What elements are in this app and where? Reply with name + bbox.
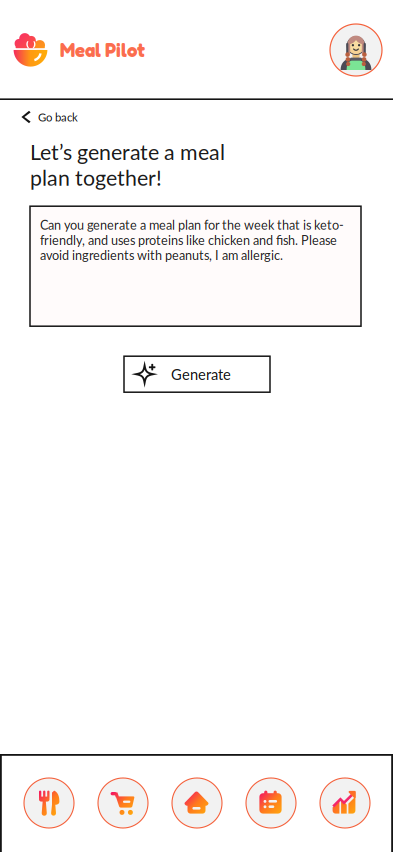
- button[interactable]: Groceries: [98, 778, 148, 828]
- staticText: Go back: [38, 110, 78, 124]
- staticText: Can you generate a meal plan for the wee…: [40, 217, 344, 263]
- button[interactable]: Profile: [330, 24, 382, 76]
- button[interactable]: Progress: [320, 778, 370, 828]
- button[interactable]: Generate: [124, 356, 270, 392]
- button[interactable]: Home: [172, 778, 222, 828]
- staticText: Let’s generate a meal plan together!: [30, 139, 225, 190]
- button[interactable]: Plan: [246, 778, 296, 828]
- staticText: Meal Pilot: [60, 39, 145, 61]
- staticText: Generate: [171, 365, 231, 383]
- button[interactable]: Go back: [0, 105, 92, 129]
- button[interactable]: Recipes: [24, 778, 74, 828]
